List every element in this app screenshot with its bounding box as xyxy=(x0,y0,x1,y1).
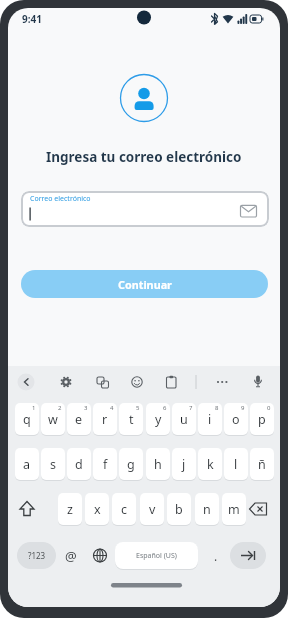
staticText: c xyxy=(121,501,128,518)
button[interactable]: e xyxy=(67,403,91,435)
button[interactable]: ?123 xyxy=(17,542,56,569)
staticText: b xyxy=(175,501,183,518)
button[interactable]: k xyxy=(198,448,222,480)
staticText: 8 xyxy=(215,404,219,412)
staticText: x xyxy=(94,501,101,518)
staticText: 9 xyxy=(241,404,245,412)
button[interactable]: g xyxy=(119,448,143,480)
button[interactable]: j xyxy=(172,448,196,480)
staticText: f xyxy=(103,456,108,473)
staticText: g xyxy=(127,456,135,473)
staticText: m xyxy=(228,501,240,518)
button[interactable] xyxy=(88,542,112,569)
button[interactable]: a xyxy=(15,448,39,480)
staticText: z xyxy=(67,501,73,518)
button[interactable]: t xyxy=(119,403,143,435)
button[interactable]: u xyxy=(172,403,196,435)
staticText: Ingresa tu correo electrónico xyxy=(46,148,242,166)
button[interactable]: h xyxy=(146,448,170,480)
staticText: 3 xyxy=(84,404,88,412)
button[interactable]: l xyxy=(224,448,248,480)
staticText: . xyxy=(214,548,218,564)
button[interactable] xyxy=(222,374,242,394)
button[interactable]: w xyxy=(41,403,65,435)
staticText: i xyxy=(208,411,212,428)
staticText: h xyxy=(154,456,162,473)
staticText: @ xyxy=(65,547,77,565)
button[interactable]: Continuar xyxy=(21,270,268,298)
staticText: u xyxy=(180,411,188,428)
staticText: 6 xyxy=(163,404,167,412)
button[interactable] xyxy=(230,542,266,569)
staticText: Español (US) xyxy=(136,551,177,561)
button[interactable]: p xyxy=(250,403,274,435)
staticText: w xyxy=(48,411,58,428)
staticText: 4 xyxy=(110,404,114,412)
button[interactable]: . xyxy=(204,542,228,569)
button[interactable] xyxy=(137,374,157,394)
button[interactable]: @ xyxy=(59,542,83,569)
staticText: ñ xyxy=(258,456,266,473)
staticText: n xyxy=(203,501,211,518)
staticText: q xyxy=(23,411,31,428)
staticText: a xyxy=(23,456,31,473)
button[interactable] xyxy=(258,374,278,394)
button[interactable]: x xyxy=(85,493,109,525)
staticText: Correo electrónico xyxy=(30,194,91,204)
button[interactable] xyxy=(66,374,86,394)
staticText: v xyxy=(149,501,156,518)
staticText: k xyxy=(207,456,214,473)
button[interactable]: v xyxy=(140,493,164,525)
button[interactable] xyxy=(171,374,191,394)
staticText: p xyxy=(258,411,266,428)
button[interactable] xyxy=(26,374,46,394)
staticText: y xyxy=(155,411,162,428)
button[interactable]: Correo electrónico xyxy=(21,191,269,227)
staticText: 0 xyxy=(267,404,271,412)
staticText: d xyxy=(75,456,83,473)
staticText: t xyxy=(129,411,134,428)
button[interactable] xyxy=(102,374,122,394)
button[interactable]: q xyxy=(15,403,39,435)
button[interactable]: ñ xyxy=(250,448,274,480)
button[interactable]: c xyxy=(112,493,136,525)
staticText: 7 xyxy=(189,404,193,412)
button[interactable]: m xyxy=(222,493,246,525)
staticText: Continuar xyxy=(118,277,172,292)
staticText: 1 xyxy=(32,404,36,412)
staticText: 5 xyxy=(136,404,140,412)
button[interactable]: f xyxy=(93,448,117,480)
button[interactable]: z xyxy=(58,493,82,525)
button[interactable]: b xyxy=(167,493,191,525)
button[interactable]: Español (US) xyxy=(115,542,198,569)
staticText: s xyxy=(50,456,56,473)
button[interactable]: r xyxy=(93,403,117,435)
staticText: e xyxy=(75,411,83,428)
button[interactable]: n xyxy=(195,493,219,525)
staticText: o xyxy=(232,411,240,428)
button[interactable]: s xyxy=(41,448,65,480)
staticText: 9:41 xyxy=(22,12,42,26)
button[interactable]: d xyxy=(67,448,91,480)
staticText: j xyxy=(182,456,186,473)
staticText: 2 xyxy=(58,404,62,412)
button[interactable]: y xyxy=(146,403,170,435)
staticText: l xyxy=(234,456,238,473)
staticText: ?123 xyxy=(28,550,46,561)
staticText: r xyxy=(102,411,108,428)
button[interactable]: o xyxy=(224,403,248,435)
button[interactable]: i xyxy=(198,403,222,435)
